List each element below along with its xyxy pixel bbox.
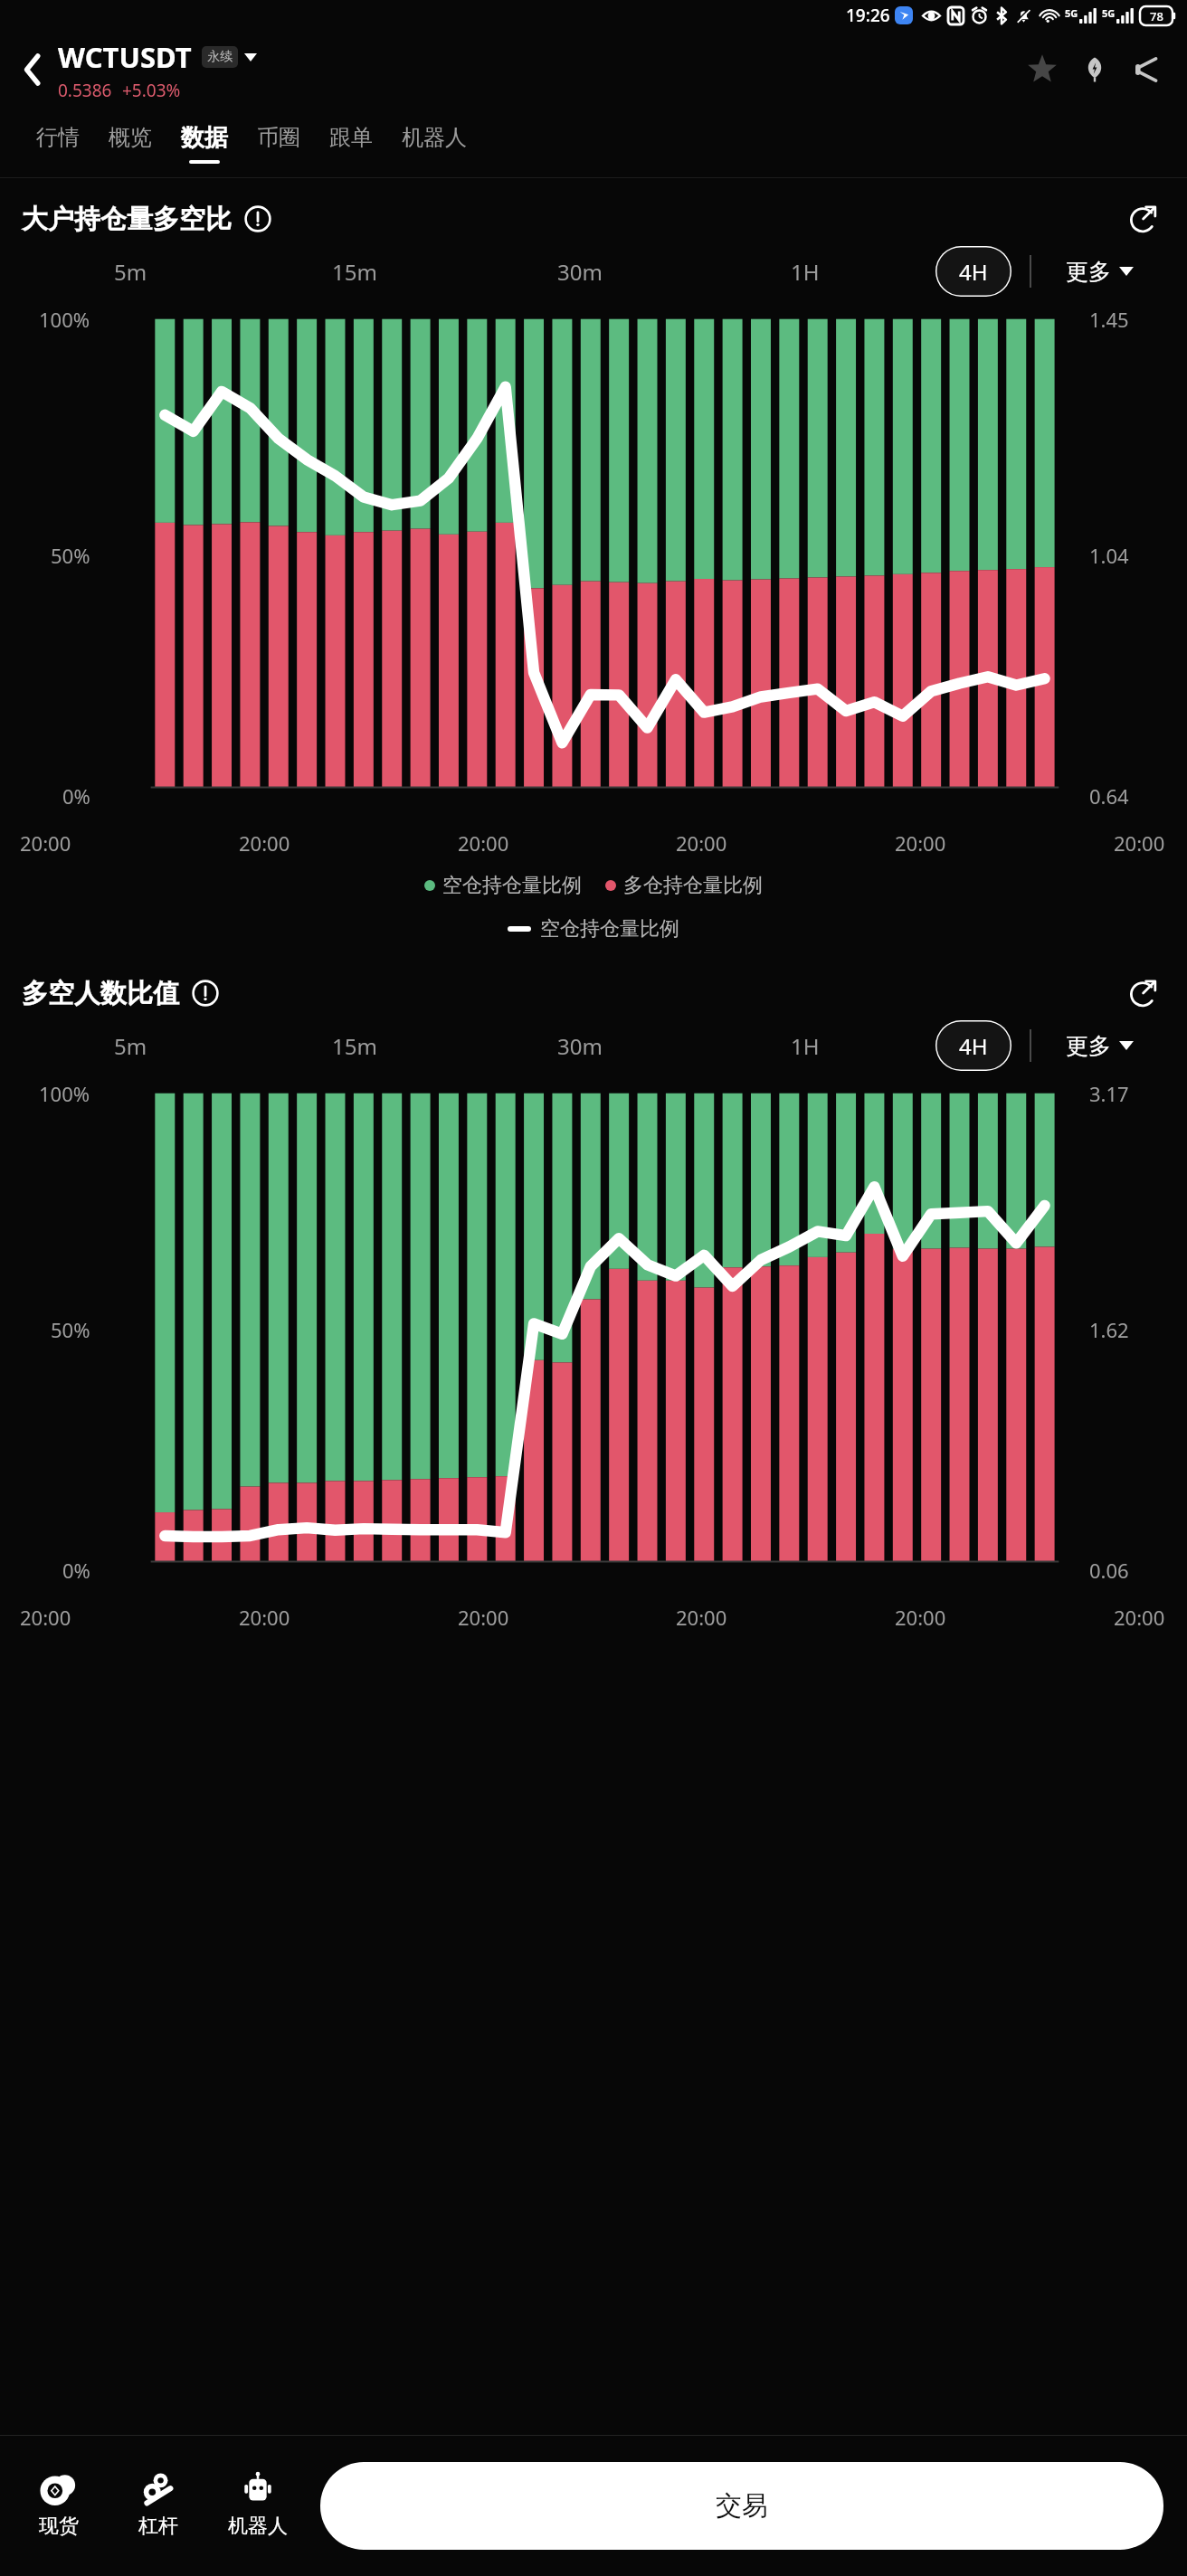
staticText: 0.06 xyxy=(1089,1557,1129,1584)
staticText: 多仓持仓量比例 xyxy=(623,873,763,898)
button[interactable]: Share xyxy=(1125,48,1169,91)
button[interactable]: 跟单 xyxy=(329,109,373,177)
staticText: 20:00 xyxy=(458,1604,509,1631)
staticText: 1.04 xyxy=(1089,542,1129,569)
staticText: 更多 xyxy=(1066,258,1111,286)
button[interactable]: 15m xyxy=(242,1018,467,1074)
button[interactable]: Back xyxy=(13,50,52,90)
button[interactable]: Info xyxy=(242,204,273,234)
staticText: 100% xyxy=(39,306,90,333)
staticText: 100% xyxy=(39,1080,90,1107)
staticText: 20:00 xyxy=(895,829,946,857)
staticText: 大户持仓量多空比 xyxy=(22,203,232,236)
button[interactable]: 5m xyxy=(18,1018,242,1074)
staticText: 更多 xyxy=(1066,1032,1111,1060)
button[interactable]: 永续 xyxy=(207,49,233,65)
staticText: 15m xyxy=(332,1031,377,1061)
staticText: 20:00 xyxy=(458,829,509,857)
staticText: 杠杆 xyxy=(138,2514,178,2539)
staticText: 0.64 xyxy=(1089,782,1129,810)
button[interactable]: Favorite xyxy=(1021,48,1064,91)
staticText: 5m xyxy=(114,1031,147,1061)
staticText: 数据 xyxy=(181,123,228,153)
staticText: 20:00 xyxy=(1114,1604,1165,1631)
button[interactable]: Expand xyxy=(1122,198,1163,240)
button[interactable]: Info xyxy=(190,978,221,1009)
staticText: +5.03% xyxy=(122,79,181,102)
button[interactable]: Alerts xyxy=(1073,48,1116,91)
button[interactable]: 更多 xyxy=(1031,243,1167,299)
staticText: 1H xyxy=(791,257,820,287)
button[interactable]: 概览 xyxy=(109,109,152,177)
staticText: 空仓持仓量比例 xyxy=(442,873,582,898)
staticText: 0% xyxy=(62,782,90,810)
button[interactable]: 5m xyxy=(18,243,242,299)
staticText: 30m xyxy=(557,1031,603,1061)
staticText: 5G xyxy=(1065,6,1078,20)
staticText: 4H xyxy=(959,1031,988,1061)
staticText: 跟单 xyxy=(329,124,373,151)
staticText: 行情 xyxy=(36,124,80,151)
staticText: 概览 xyxy=(109,124,152,151)
button[interactable]: 机器人 xyxy=(208,2473,308,2539)
staticText: WCTUSDT xyxy=(58,38,192,76)
staticText: 空仓持仓量比例 xyxy=(540,916,679,942)
button[interactable]: 30m xyxy=(467,243,692,299)
staticText: 5m xyxy=(114,257,147,287)
button[interactable]: 杠杆 xyxy=(109,2473,208,2539)
button[interactable]: 15m xyxy=(242,243,467,299)
staticText: 19:26 xyxy=(846,4,890,27)
staticText: 20:00 xyxy=(20,829,71,857)
staticText: 1H xyxy=(791,1031,820,1061)
button[interactable]: 币圈 xyxy=(257,109,300,177)
staticText: 50% xyxy=(51,542,90,569)
staticText: 现货 xyxy=(39,2514,79,2539)
button[interactable]: 4H xyxy=(917,243,1030,299)
staticText: 4H xyxy=(959,257,988,287)
button[interactable] xyxy=(244,53,257,62)
staticText: 5G xyxy=(1102,6,1116,20)
button[interactable]: 1H xyxy=(692,243,917,299)
button[interactable]: 现货 xyxy=(9,2473,109,2539)
button[interactable]: Expand xyxy=(1122,972,1163,1014)
staticText: 30m xyxy=(557,257,603,287)
staticText: 20:00 xyxy=(895,1604,946,1631)
staticText: 20:00 xyxy=(1114,829,1165,857)
staticText: 0% xyxy=(62,1557,90,1584)
staticText: 多空人数比值 xyxy=(22,977,179,1010)
staticText: 机器人 xyxy=(228,2514,288,2539)
staticText: 1.45 xyxy=(1089,306,1129,333)
staticText: 交易 xyxy=(716,2489,768,2523)
staticText: 20:00 xyxy=(676,1604,727,1631)
staticText: 20:00 xyxy=(239,1604,290,1631)
staticText: 50% xyxy=(51,1316,90,1343)
staticText: 3.17 xyxy=(1089,1080,1129,1107)
button[interactable]: 数据 xyxy=(181,109,228,177)
button[interactable]: 1H xyxy=(692,1018,917,1074)
staticText: 币圈 xyxy=(257,124,300,151)
staticText: 20:00 xyxy=(20,1604,71,1631)
staticText: 15m xyxy=(332,257,377,287)
staticText: 1.62 xyxy=(1089,1316,1129,1343)
staticText: 机器人 xyxy=(402,124,467,151)
staticText: 78 xyxy=(1150,8,1163,24)
button[interactable]: 机器人 xyxy=(402,109,467,177)
button[interactable]: 行情 xyxy=(36,109,80,177)
staticText: 0.5386 xyxy=(58,79,112,102)
staticText: 20:00 xyxy=(676,829,727,857)
button[interactable]: 更多 xyxy=(1031,1018,1167,1074)
button[interactable]: 4H xyxy=(917,1018,1030,1074)
button[interactable]: 交易 xyxy=(320,2462,1163,2550)
button[interactable]: 30m xyxy=(467,1018,692,1074)
staticText: 20:00 xyxy=(239,829,290,857)
staticText: 永续 xyxy=(207,49,233,65)
